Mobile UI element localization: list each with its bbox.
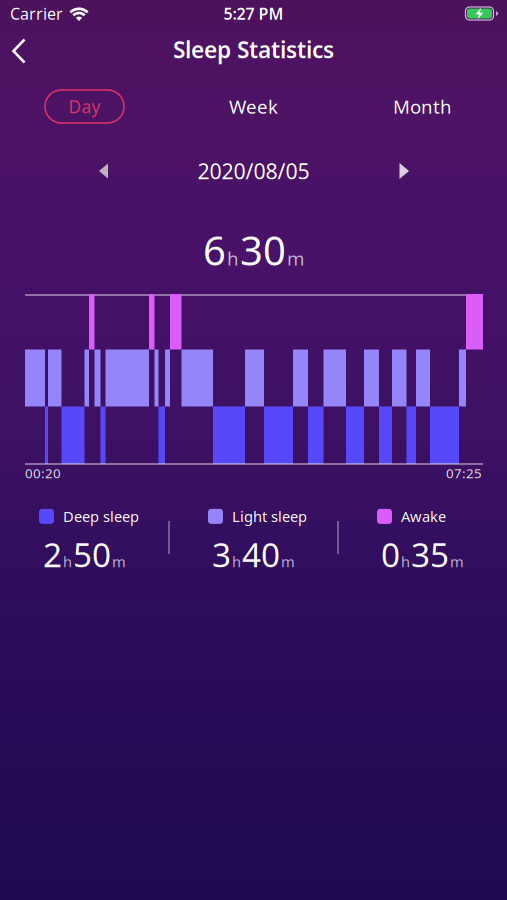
- button[interactable]: Day: [0, 90, 169, 123]
- staticText: 5:27 PM: [223, 3, 283, 24]
- button[interactable]: Week: [169, 90, 338, 123]
- staticText: 35: [411, 532, 449, 576]
- staticText: m: [112, 552, 126, 571]
- staticText: Light sleep: [232, 507, 307, 526]
- staticText: Sleep Statistics: [173, 34, 334, 64]
- staticText: 00:20: [25, 464, 61, 482]
- button[interactable]: Back: [0, 27, 26, 75]
- staticText: h: [227, 246, 239, 271]
- staticText: 6: [203, 223, 226, 276]
- staticText: h: [232, 552, 241, 571]
- staticText: 2020/08/05: [197, 157, 309, 185]
- staticText: 0: [381, 532, 400, 576]
- staticText: h: [401, 552, 410, 571]
- staticText: 50: [73, 532, 111, 576]
- staticText: Week: [229, 94, 278, 119]
- button[interactable]: Next day: [387, 154, 421, 188]
- button[interactable]: Month: [338, 90, 507, 123]
- staticText: Month: [393, 94, 452, 119]
- staticText: 30: [240, 223, 286, 276]
- staticText: h: [63, 552, 72, 571]
- staticText: m: [281, 552, 295, 571]
- button[interactable]: Previous day: [87, 154, 120, 187]
- staticText: 40: [242, 532, 280, 576]
- staticText: Day: [68, 95, 100, 118]
- staticText: 07:25: [446, 464, 482, 482]
- staticText: Awake: [401, 507, 446, 526]
- staticText: 3: [212, 532, 231, 576]
- staticText: m: [287, 246, 304, 271]
- staticText: Carrier: [10, 3, 63, 24]
- staticText: Deep sleep: [63, 507, 139, 526]
- staticText: m: [450, 552, 464, 571]
- staticText: 2: [43, 532, 62, 576]
